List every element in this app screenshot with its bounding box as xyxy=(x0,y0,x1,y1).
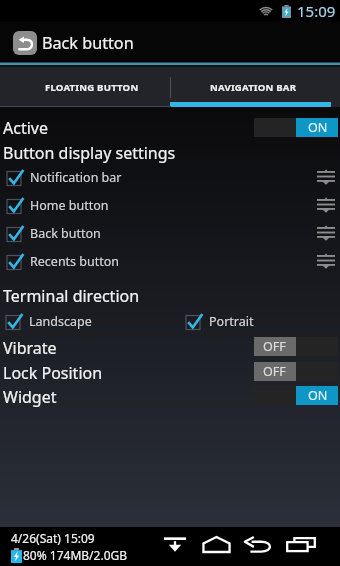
button[interactable]: Back button xyxy=(0,220,340,246)
button[interactable]: Back button xyxy=(0,22,340,62)
button[interactable]: ON xyxy=(254,386,338,405)
staticText: ON xyxy=(308,387,328,404)
button[interactable]: Hide navigation bar xyxy=(163,527,187,561)
button[interactable]: Home xyxy=(202,527,231,561)
staticText: Back button xyxy=(30,225,101,242)
button[interactable]: Portrait xyxy=(186,313,254,330)
staticText: Home button xyxy=(30,197,109,214)
staticText: Active xyxy=(3,117,48,139)
button[interactable]: Home button xyxy=(0,192,340,218)
button[interactable]: ON xyxy=(254,118,338,137)
button[interactable]: NAVIGATION BAR xyxy=(170,67,340,107)
staticText: 15:09 xyxy=(297,1,336,21)
staticText: NAVIGATION BAR xyxy=(210,81,297,94)
button[interactable]: Recent apps xyxy=(286,527,316,561)
staticText: Back button xyxy=(42,32,134,54)
staticText: OFF xyxy=(263,338,286,355)
staticText: Vibrate xyxy=(3,337,57,359)
staticText: ON xyxy=(308,119,328,136)
button[interactable]: FLOATING BUTTON xyxy=(0,67,170,107)
staticText: FLOATING BUTTON xyxy=(45,81,139,94)
staticText: Button display settings xyxy=(3,142,176,164)
staticText: Portrait xyxy=(209,313,254,330)
staticText: 80% 174MB/2.0GB xyxy=(23,547,128,563)
staticText: Recents button xyxy=(30,253,120,270)
button[interactable]: OFF xyxy=(254,337,338,356)
staticText: 4/26(Sat) 15:09 xyxy=(11,530,95,546)
button[interactable]: Back xyxy=(244,527,273,561)
button[interactable]: Lock Position xyxy=(0,360,340,386)
button[interactable]: Widget xyxy=(0,384,340,410)
button[interactable]: OFF xyxy=(254,362,338,381)
button[interactable]: Landscape xyxy=(0,313,92,330)
staticText: Notification bar xyxy=(30,169,122,186)
button[interactable]: Notification bar xyxy=(0,164,340,190)
staticText: Lock Position xyxy=(3,362,103,384)
button[interactable]: Recents button xyxy=(0,248,340,274)
staticText: Terminal direction xyxy=(3,285,140,307)
staticText: Widget xyxy=(3,386,57,408)
button[interactable]: Vibrate xyxy=(0,335,340,361)
staticText: Landscape xyxy=(29,313,92,330)
staticText: OFF xyxy=(263,363,286,380)
